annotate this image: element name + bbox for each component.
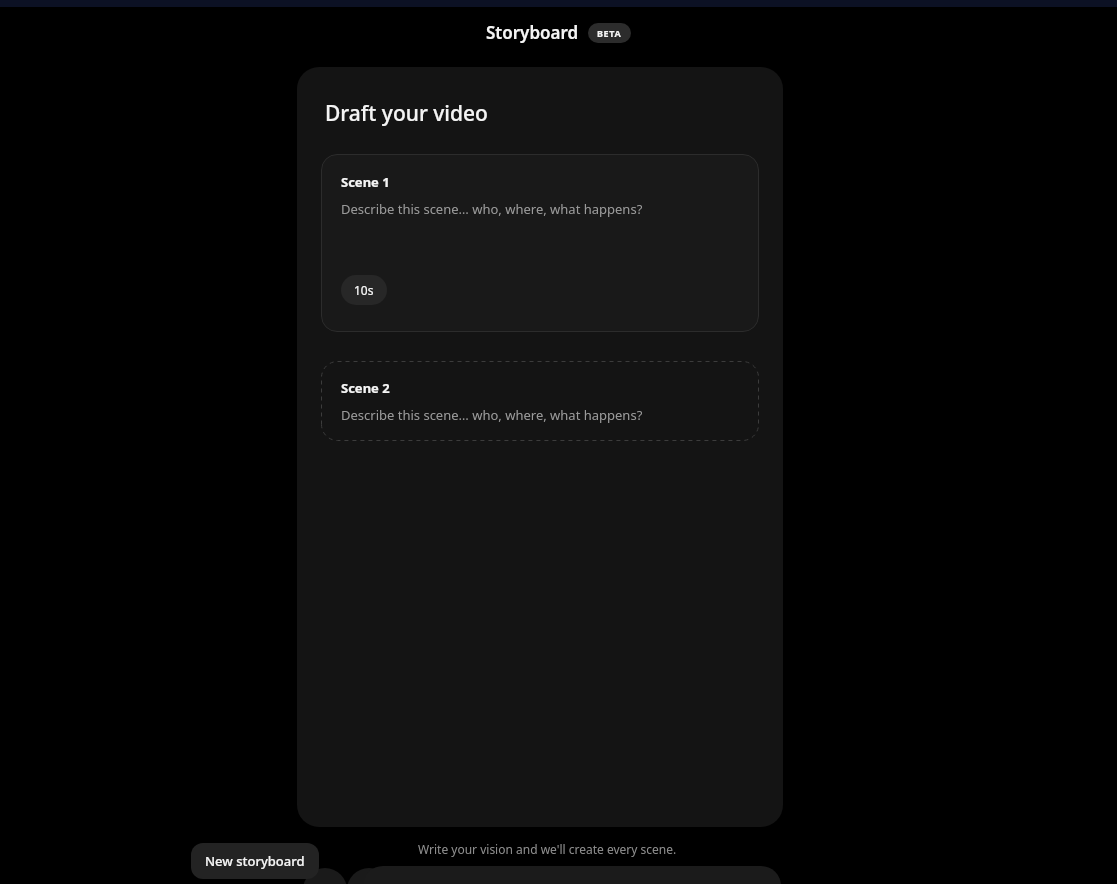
button[interactable]: 10s xyxy=(341,275,387,305)
button[interactable]: Write your vision xyxy=(363,866,781,884)
staticText: BETA xyxy=(597,27,622,39)
button[interactable]: Record xyxy=(347,868,391,884)
button[interactable]: Scene 1 xyxy=(321,154,759,332)
button[interactable]: BETA xyxy=(588,23,631,43)
staticText: Draft your video xyxy=(325,99,488,128)
staticText: Describe this scene… who, where, what ha… xyxy=(341,200,643,218)
button[interactable]: New storyboard xyxy=(191,843,319,879)
button[interactable]: Attach xyxy=(303,868,347,884)
staticText: Describe this scene… who, where, what ha… xyxy=(341,406,643,424)
staticText: 10s xyxy=(354,282,374,298)
staticText: Scene 1 xyxy=(341,173,390,191)
staticText: Scene 2 xyxy=(341,379,390,397)
button[interactable]: Scene 2 xyxy=(321,361,759,441)
staticText: Write your vision and we'll create every… xyxy=(418,841,677,857)
staticText: Storyboard xyxy=(486,21,579,44)
staticText: New storyboard xyxy=(205,852,305,870)
